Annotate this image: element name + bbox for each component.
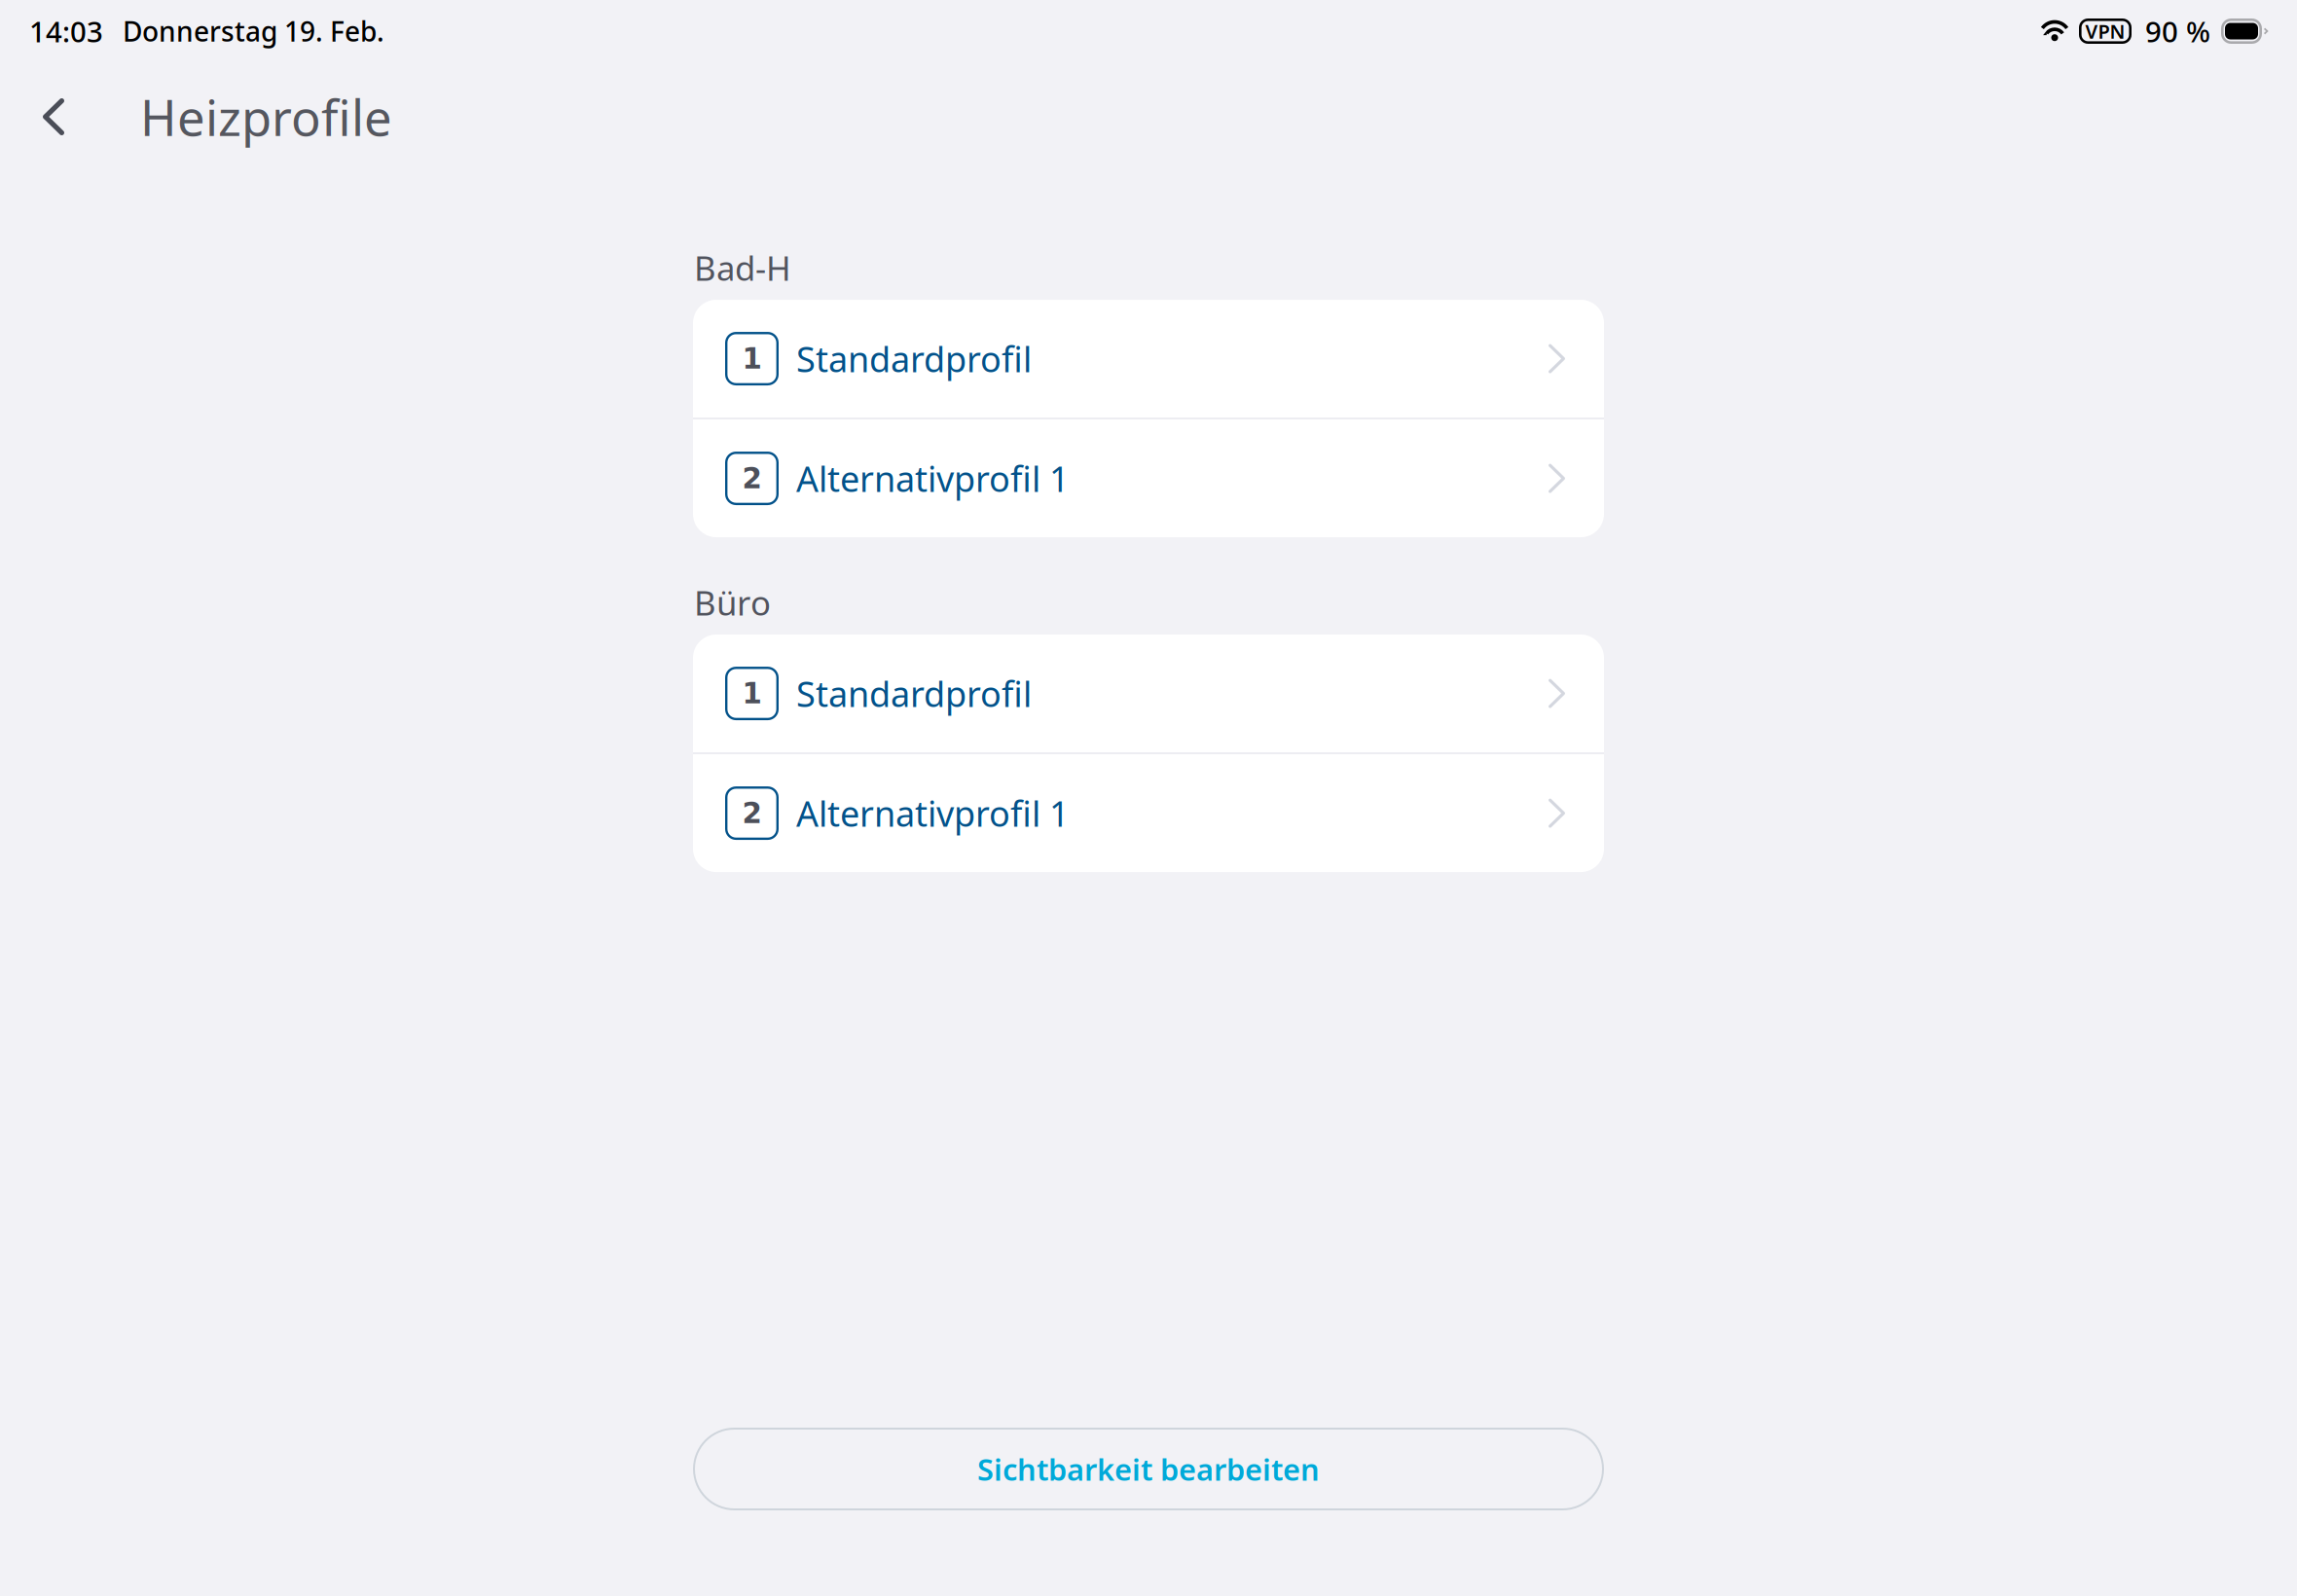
staticText: 1 — [742, 677, 762, 710]
staticText: Standardprofil — [796, 670, 1032, 717]
staticText: 14:03 — [29, 12, 103, 50]
staticText: Büro — [694, 580, 771, 625]
staticText: Standardprofil — [796, 335, 1032, 382]
staticText: 90 % — [2145, 12, 2210, 50]
button[interactable]: 1 — [693, 300, 1604, 417]
staticText: 2 — [742, 797, 762, 830]
staticText: Alternativprofil 1 — [796, 790, 1070, 836]
button[interactable]: 1 — [693, 635, 1604, 752]
button[interactable]: Sichtbarkeit bearbeiten — [693, 1428, 1604, 1510]
staticText: VPN — [2085, 18, 2125, 44]
button[interactable]: 2 — [693, 754, 1604, 872]
button[interactable]: Back — [0, 79, 86, 155]
staticText: 1 — [742, 342, 762, 375]
staticText: 2 — [742, 462, 762, 495]
staticText: Bad-H — [694, 245, 791, 290]
staticText: Heizprofile — [140, 84, 392, 150]
button[interactable]: 2 — [693, 419, 1604, 537]
staticText: Sichtbarkeit bearbeiten — [977, 1449, 1320, 1489]
staticText: Alternativprofil 1 — [796, 455, 1070, 502]
staticText: Donnerstag 19. Feb. — [123, 13, 384, 49]
